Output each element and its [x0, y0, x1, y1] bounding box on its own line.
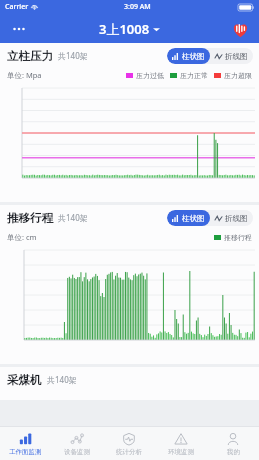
button[interactable]: 统计分析 — [103, 427, 155, 460]
staticText: 设备监测 — [64, 448, 90, 456]
button[interactable]: 我的 — [207, 427, 259, 460]
staticText: 压力过低 — [136, 71, 164, 80]
button[interactable]: 折线图 — [210, 210, 253, 226]
staticText: 环境监测 — [168, 448, 194, 456]
staticText: 统计分析 — [116, 448, 142, 456]
button[interactable]: More — [8, 18, 30, 40]
staticText: 折线图 — [225, 52, 248, 61]
staticText: 3上1008 — [99, 20, 150, 38]
staticText: 压力超限 — [224, 71, 252, 80]
button[interactable]: 柱状图 — [167, 48, 210, 64]
staticText: 柱状图 — [182, 52, 205, 61]
staticText: Carrier — [5, 2, 29, 12]
staticText: 立柱压力 — [7, 49, 53, 63]
button[interactable]: 环境监测 — [155, 427, 207, 460]
button[interactable]: 折线图 — [210, 48, 253, 64]
staticText: 折线图 — [225, 214, 248, 223]
staticText: 单位: cm — [7, 232, 37, 242]
staticText: 单位: Mpa — [7, 70, 42, 80]
button[interactable]: 3上1008 — [99, 20, 160, 38]
staticText: 推移行程 — [7, 211, 53, 225]
staticText: 3:09 AM — [124, 2, 151, 12]
staticText: 我的 — [227, 448, 240, 456]
staticText: 采煤机 — [7, 373, 42, 387]
staticText: 柱状图 — [182, 214, 205, 223]
staticText: 推移行程 — [224, 233, 252, 242]
button[interactable]: 柱状图 — [167, 210, 210, 226]
staticText: 工作面监测 — [9, 448, 42, 456]
staticText: 共140架 — [58, 50, 88, 61]
staticText: 压力正常 — [180, 71, 208, 80]
button[interactable]: 工作面监测 — [0, 427, 51, 460]
staticText: 共140架 — [47, 374, 77, 385]
button[interactable]: 设备监测 — [51, 427, 103, 460]
staticText: 共140架 — [58, 212, 88, 223]
button[interactable]: Alarm sound — [229, 18, 251, 40]
